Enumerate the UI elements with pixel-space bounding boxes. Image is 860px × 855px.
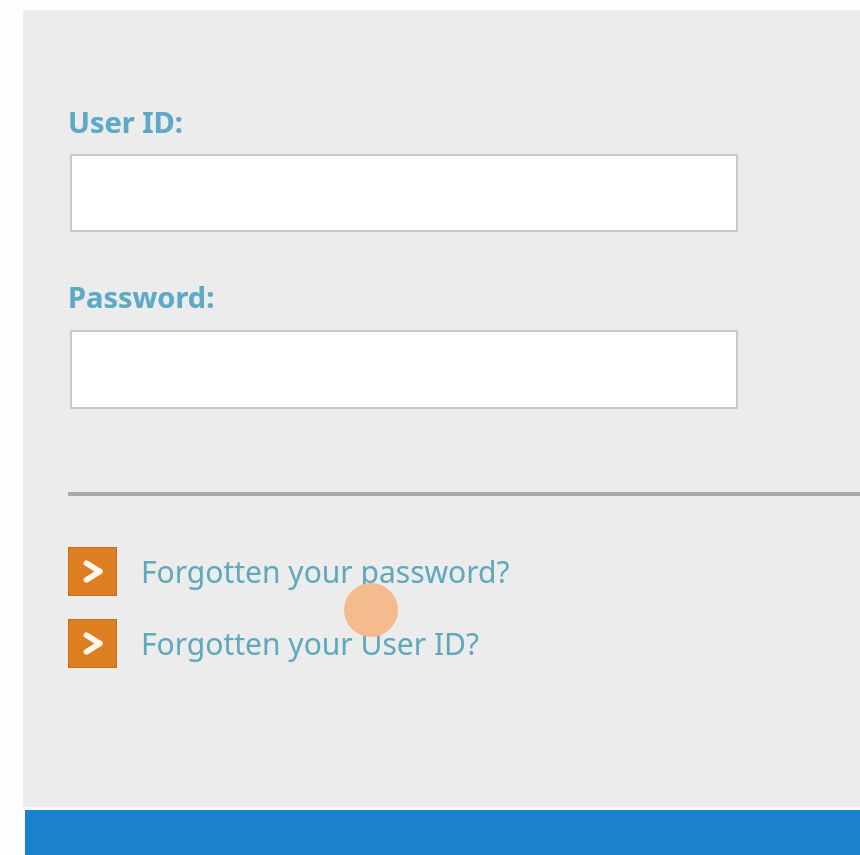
button[interactable]: Forgotten your User ID <box>68 619 480 668</box>
button[interactable] <box>70 154 738 232</box>
staticText: User ID: <box>68 102 183 141</box>
staticText: Forgotten your password? <box>141 551 510 592</box>
button[interactable]: Forgotten your password <box>68 547 510 596</box>
staticText: Password: <box>68 277 215 316</box>
other: Forgotten your User ID <box>68 619 117 668</box>
staticText: Forgotten your User ID? <box>141 623 480 664</box>
other: Forgotten your password <box>68 547 117 596</box>
button[interactable] <box>70 330 738 409</box>
